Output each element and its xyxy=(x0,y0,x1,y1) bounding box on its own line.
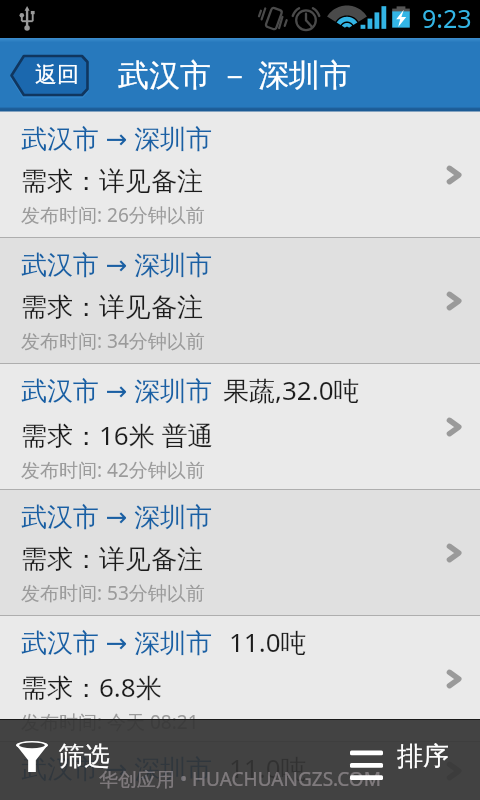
staticText: 需求：16米 普通 xyxy=(21,417,214,453)
staticText: 武汉市 → 深圳市 xyxy=(21,750,213,786)
staticText: 需求：6.8米 xyxy=(21,669,162,705)
staticText: 发布时间: 53分钟以前 xyxy=(21,580,205,606)
button[interactable]: 排序 xyxy=(240,720,480,800)
staticText: 武汉市 → 深圳市 xyxy=(21,120,213,156)
staticText: 返回 xyxy=(35,61,79,89)
staticText: 需求：详见备注 xyxy=(21,165,203,198)
staticText: 武汉市 → 深圳市 xyxy=(21,498,213,534)
other: 详情 xyxy=(442,415,466,439)
button[interactable]: 武汉市 → 深圳市 xyxy=(0,238,480,364)
staticText: 华创应用 • HUACHUANGZS.COM xyxy=(99,766,381,792)
staticText: 11.0吨 xyxy=(229,624,307,660)
other: 详情 xyxy=(442,163,466,187)
staticText: 筛选 xyxy=(58,740,110,773)
staticText: 发布时间: 34分钟以前 xyxy=(21,328,205,354)
other: 详情 xyxy=(442,289,466,313)
staticText: 排序 xyxy=(397,740,449,773)
staticText: 发布时间: 42分钟以前 xyxy=(21,457,205,483)
other: 详情 xyxy=(442,759,466,783)
button[interactable]: 筛选 xyxy=(0,720,240,800)
button[interactable]: 返回 xyxy=(10,54,89,97)
staticText: 11.0吨 xyxy=(229,750,307,786)
staticText: 武汉市 － 深圳市 xyxy=(118,53,352,95)
staticText: 9:23 xyxy=(422,1,472,35)
staticText: 需求：详见备注 xyxy=(21,291,203,324)
staticText: 果蔬,32.0吨 xyxy=(223,372,360,408)
staticText: 发布时间: 26分钟以前 xyxy=(21,202,205,228)
staticText: 武汉市 → 深圳市 xyxy=(21,372,213,408)
button[interactable]: 武汉市 → 深圳市 xyxy=(0,742,480,800)
other: 详情 xyxy=(442,541,466,565)
button[interactable]: 武汉市 → 深圳市 xyxy=(0,364,480,490)
button[interactable]: 武汉市 → 深圳市 xyxy=(0,112,480,238)
button[interactable]: 武汉市 → 深圳市 xyxy=(0,490,480,616)
staticText: 武汉市 → 深圳市 xyxy=(21,624,213,660)
staticText: 需求：详见备注 xyxy=(21,543,203,576)
staticText: 发布时间: 今天 08:21 xyxy=(21,709,199,735)
other: 详情 xyxy=(442,667,466,691)
button[interactable]: 武汉市 → 深圳市 xyxy=(0,616,480,742)
staticText: 武汉市 → 深圳市 xyxy=(21,246,213,282)
